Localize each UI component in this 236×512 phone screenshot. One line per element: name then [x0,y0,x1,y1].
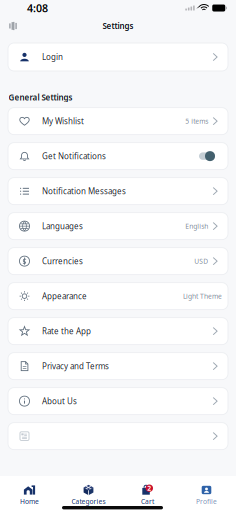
button[interactable]: Home [0,476,59,506]
staticText: My Wishlist [42,116,84,126]
staticText: Languages [42,221,83,231]
staticText: 4:08 [27,1,48,15]
staticText: Categories [71,497,105,506]
button[interactable]: Get Notifications [8,143,228,170]
button[interactable]: Profile [177,476,236,506]
staticText: General Settings [8,92,72,103]
button[interactable]: Rate the App [8,318,228,345]
staticText: About Us [42,396,77,406]
button[interactable]: Notification Messages [8,178,228,205]
staticText: English [185,222,208,231]
staticText: 5 items [185,117,208,126]
button[interactable]: Privacy and Terms [8,353,228,380]
button[interactable]: My Wishlist [8,108,228,135]
staticText: Appearance [42,291,87,301]
button[interactable]: Login [8,43,228,71]
button[interactable]: Menu [4,18,22,34]
button[interactable]: Appearance [8,283,228,310]
staticText: Currencies [42,256,83,266]
staticText: 2 [147,484,151,493]
button[interactable]: Languages [8,213,228,240]
button[interactable] [8,423,228,450]
button[interactable]: Categories [59,476,118,506]
button[interactable]: About Us [8,388,228,415]
staticText: Light Theme [183,292,222,301]
staticText: Rate the App [42,326,91,336]
staticText: Home [20,497,39,506]
staticText: Cart [141,497,154,506]
button[interactable]: Currencies [8,248,228,275]
staticText: USD [194,257,208,266]
staticText: Notification Messages [42,186,126,196]
button[interactable]: 2 [118,476,177,506]
staticText: Login [42,52,63,62]
staticText: Profile [196,497,217,506]
staticText: Settings [102,21,133,31]
staticText: Privacy and Terms [42,361,109,371]
staticText: Get Notifications [42,151,106,161]
